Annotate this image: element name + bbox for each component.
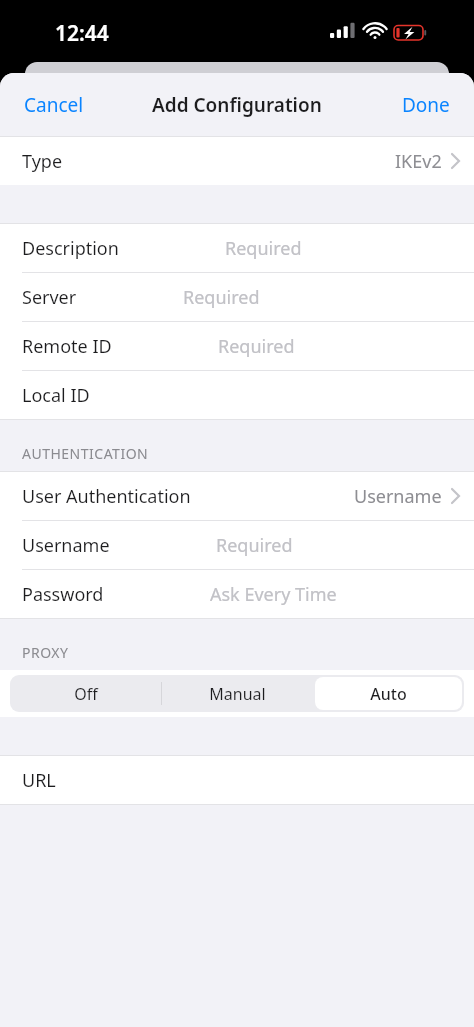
button[interactable]: Type	[0, 137, 474, 185]
button[interactable]: Password	[0, 570, 474, 618]
staticText: IKEv2	[395, 149, 442, 174]
button[interactable]: Auto	[315, 677, 462, 710]
staticText: PROXY	[22, 643, 69, 662]
staticText: Required	[218, 334, 295, 359]
staticText: Remote ID	[22, 334, 112, 359]
button[interactable]: User Authentication	[0, 472, 474, 520]
staticText: Type	[22, 149, 63, 174]
staticText: Username	[22, 533, 110, 558]
button[interactable]: Server	[0, 273, 474, 321]
staticText: Required	[216, 533, 293, 558]
button[interactable]: Cancel	[0, 78, 108, 132]
staticText: Add Configuration	[152, 92, 322, 118]
button[interactable]: Done	[378, 78, 474, 132]
button[interactable]: Remote ID	[0, 322, 474, 370]
button[interactable]: Off	[12, 677, 159, 710]
staticText: Done	[402, 92, 450, 118]
staticText: Cancel	[24, 92, 84, 118]
button[interactable]: Local ID	[0, 371, 474, 419]
staticText: Manual	[209, 683, 266, 705]
staticText: 12:44	[55, 19, 109, 48]
staticText: Description	[22, 236, 119, 261]
staticText: Required	[225, 236, 302, 261]
staticText: URL	[22, 768, 56, 793]
staticText: Server	[22, 285, 77, 310]
staticText: Auto	[370, 683, 407, 705]
staticText: Required	[183, 285, 260, 310]
staticText: Local ID	[22, 383, 90, 408]
button[interactable]: Manual	[164, 677, 311, 710]
button[interactable]: Description	[0, 224, 474, 272]
button[interactable]: Username	[0, 521, 474, 569]
staticText: AUTHENTICATION	[22, 444, 149, 463]
staticText: User Authentication	[22, 484, 191, 509]
staticText: Password	[22, 582, 104, 607]
staticText: Ask Every Time	[210, 582, 337, 607]
staticText: Off	[74, 683, 98, 705]
button[interactable]: URL	[0, 756, 474, 804]
staticText: Username	[354, 484, 442, 509]
